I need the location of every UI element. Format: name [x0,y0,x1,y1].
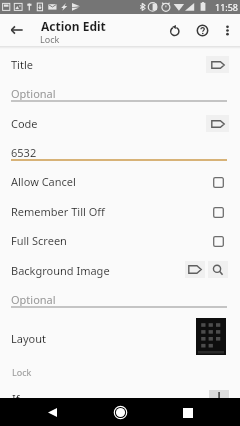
staticText: Lock [12,366,32,378]
staticText: 6532 [11,145,37,160]
staticText: Full Screen [11,233,67,248]
button[interactable]: Code [0,112,240,166]
button[interactable]: Home [107,398,133,426]
staticText: Lock [40,33,60,45]
button[interactable]: Allow Cancel [0,168,240,197]
button[interactable]: Recents [174,399,201,426]
button[interactable]: More options [214,17,240,43]
staticText: Remember Till Off [11,204,105,219]
staticText: Title [11,57,33,72]
button[interactable]: Search [208,261,228,278]
button[interactable]: Back [39,399,66,426]
staticText: Layout [11,331,46,346]
staticText: Code [11,116,38,131]
button[interactable]: Full Screen [0,227,240,256]
button[interactable]: Back [3,16,31,44]
button[interactable]: Help [189,17,215,43]
button[interactable]: Remember Till Off [0,198,240,227]
button[interactable]: Title [0,53,240,107]
staticText: Background Image [11,263,110,278]
staticText: Optional [11,86,56,101]
button[interactable]: Tag [206,56,229,73]
staticText: Allow Cancel [11,174,76,189]
button[interactable]: Tag [185,261,205,278]
staticText: Optional [11,292,56,307]
staticText: If [12,391,20,406]
staticText: Action Edit [41,18,106,34]
button[interactable]: Layout [0,316,240,358]
staticText: 11:58 [215,1,239,13]
button[interactable]: Tag [206,115,229,132]
button[interactable]: Undo [161,17,187,43]
button[interactable]: Scroll [209,390,229,398]
button[interactable]: Background Image [0,259,240,313]
